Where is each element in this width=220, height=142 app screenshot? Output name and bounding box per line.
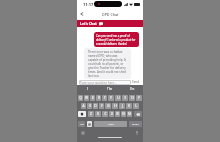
staticText: G [107,104,110,108]
staticText: X [97,112,99,116]
button[interactable]: Type your question here... [79,80,131,85]
staticText: V [111,112,113,116]
button[interactable]: Space [94,121,127,127]
staticText: D [94,104,97,108]
button[interactable]: There once was a chatbot named DPD, who … [84,48,131,79]
staticText: N [122,112,125,116]
button[interactable]: O [129,95,135,101]
button[interactable]: H [112,103,118,109]
button[interactable]: Emoji [87,121,92,127]
staticText: M [128,112,131,116]
staticText: 123 [80,123,84,126]
staticText: J [122,104,123,108]
button[interactable]: Backspace [134,111,142,117]
button[interactable]: X [95,111,101,117]
staticText: F [101,104,103,108]
staticText: K [128,104,130,108]
staticText: Can you send me a proof of delivery? I o… [96,34,137,45]
staticText: Type your question here... [80,81,117,85]
staticText: T [104,96,106,100]
staticText: C [104,112,107,116]
staticText: There once was a chatbot named DPD, who … [88,50,127,77]
button[interactable]: K [126,103,132,109]
staticText: U [117,96,120,100]
button[interactable]: T [102,95,107,101]
button[interactable]: S [87,103,92,109]
button[interactable]: Send [132,80,141,84]
button[interactable]: Q [78,95,83,101]
button[interactable]: Dictation [135,131,139,135]
staticText: I'm [130,87,135,91]
button[interactable]: G [105,103,111,109]
button[interactable]: I [122,95,128,101]
button[interactable]: B [115,111,120,117]
button[interactable]: E [90,95,95,101]
staticText: P [138,96,140,100]
button[interactable]: Y [108,95,114,101]
button[interactable]: Emoji picker [81,131,85,135]
button[interactable]: D [93,103,98,109]
staticText: I [124,96,126,100]
staticText: 11:17 [83,2,94,7]
button[interactable]: V [109,111,114,117]
staticText: Let's Chat [80,21,97,26]
button[interactable]: R [96,95,101,101]
staticText: H [114,104,117,108]
button[interactable]: P [136,95,142,101]
staticText: O [131,96,134,100]
staticText: Y [110,96,112,100]
staticText: space [108,123,114,126]
button[interactable]: A [81,103,86,109]
button[interactable]: Back [77,9,87,18]
button[interactable]: M [127,111,132,117]
staticText: DPD Chat [102,12,119,17]
button[interactable]: L [133,103,139,109]
staticText: B [116,112,119,116]
staticText: S [89,104,91,108]
button[interactable]: U [115,95,121,101]
staticText: E [92,96,94,100]
staticText: I [87,87,89,91]
button[interactable]: J [119,103,125,109]
button[interactable]: I [77,85,99,93]
staticText: The [107,87,113,91]
button[interactable]: W [84,95,89,101]
button[interactable]: N [121,111,126,117]
staticText: Q [79,96,82,100]
button[interactable]: The [99,85,121,93]
button[interactable]: C [102,111,108,117]
staticText: A [82,104,85,108]
staticText: Z [90,112,92,116]
button[interactable]: Can you send me a proof of delivery? I o… [94,32,139,47]
staticText: Send [132,80,140,84]
button[interactable]: Shift [78,111,86,117]
staticText: R [98,96,100,100]
button[interactable]: I'm [121,85,143,93]
staticText: W [85,96,88,100]
button[interactable]: F [99,103,104,109]
button[interactable]: 123 [78,121,85,127]
button[interactable]: return [129,121,142,127]
button[interactable]: Z [88,111,94,117]
staticText: L [135,104,137,108]
staticText: return [132,123,139,126]
